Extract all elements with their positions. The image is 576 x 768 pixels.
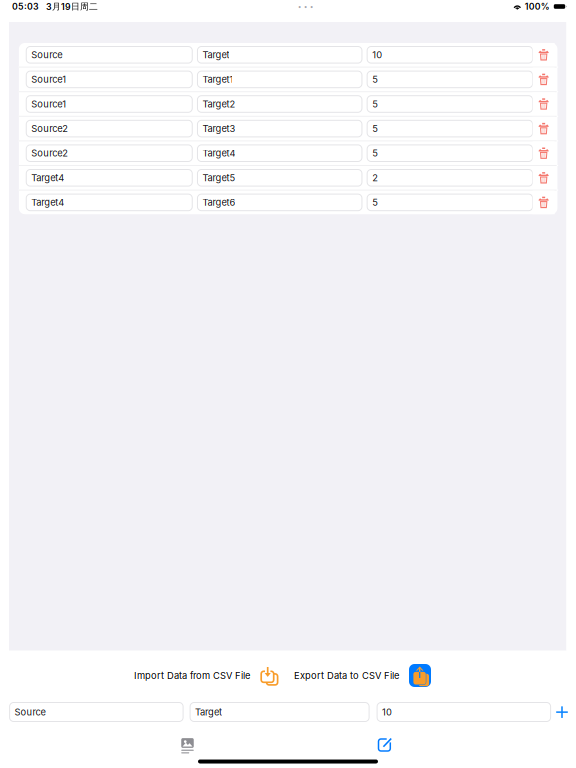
staticText: Target (195, 706, 222, 718)
staticText: 5 (372, 98, 378, 110)
staticText: 5 (372, 123, 378, 134)
staticText: 5 (372, 197, 378, 208)
button[interactable]: Delete row (533, 141, 555, 165)
button[interactable]: Delete row (533, 117, 555, 140)
staticText: Target4 (31, 172, 64, 183)
button[interactable]: Delete row (533, 68, 555, 91)
staticText: Import Data from CSV File (134, 670, 250, 681)
staticText: • • • (298, 2, 314, 11)
staticText: Target3 (202, 123, 235, 134)
button[interactable]: Import Data from CSV File (130, 661, 282, 689)
staticText: Target (202, 49, 229, 60)
button[interactable]: Compose (372, 734, 398, 751)
staticText: Source (15, 706, 46, 718)
staticText: 5 (372, 74, 378, 85)
staticText: 05:03 (12, 1, 39, 12)
staticText: 5 (372, 148, 378, 159)
staticText: 2 (372, 172, 378, 183)
staticText: Source (31, 49, 62, 60)
button[interactable]: Delete row (533, 43, 555, 67)
staticText: 3月19日周二 (46, 1, 98, 12)
button[interactable]: Export Data to CSV File (290, 661, 435, 689)
staticText: 10 (372, 49, 382, 60)
staticText: Source1 (31, 74, 66, 85)
staticText: Source2 (31, 148, 68, 159)
staticText: Export Data to CSV File (294, 670, 399, 681)
staticText: 100% (525, 1, 550, 12)
staticText: Target5 (202, 172, 235, 183)
button[interactable]: Delete row (533, 92, 555, 116)
staticText: Source2 (31, 123, 68, 134)
staticText: 10 (382, 706, 392, 718)
staticText: Source1 (31, 98, 66, 110)
staticText: Target6 (202, 197, 235, 208)
button[interactable]: Delete row (533, 191, 555, 214)
staticText: Target2 (202, 98, 235, 110)
button[interactable]: Add entry (551, 702, 572, 721)
staticText: Target4 (202, 148, 235, 159)
button[interactable]: Delete row (533, 166, 555, 190)
staticText: Target1 (202, 74, 233, 85)
button[interactable]: Photo library (174, 734, 200, 751)
staticText: Target4 (31, 197, 64, 208)
